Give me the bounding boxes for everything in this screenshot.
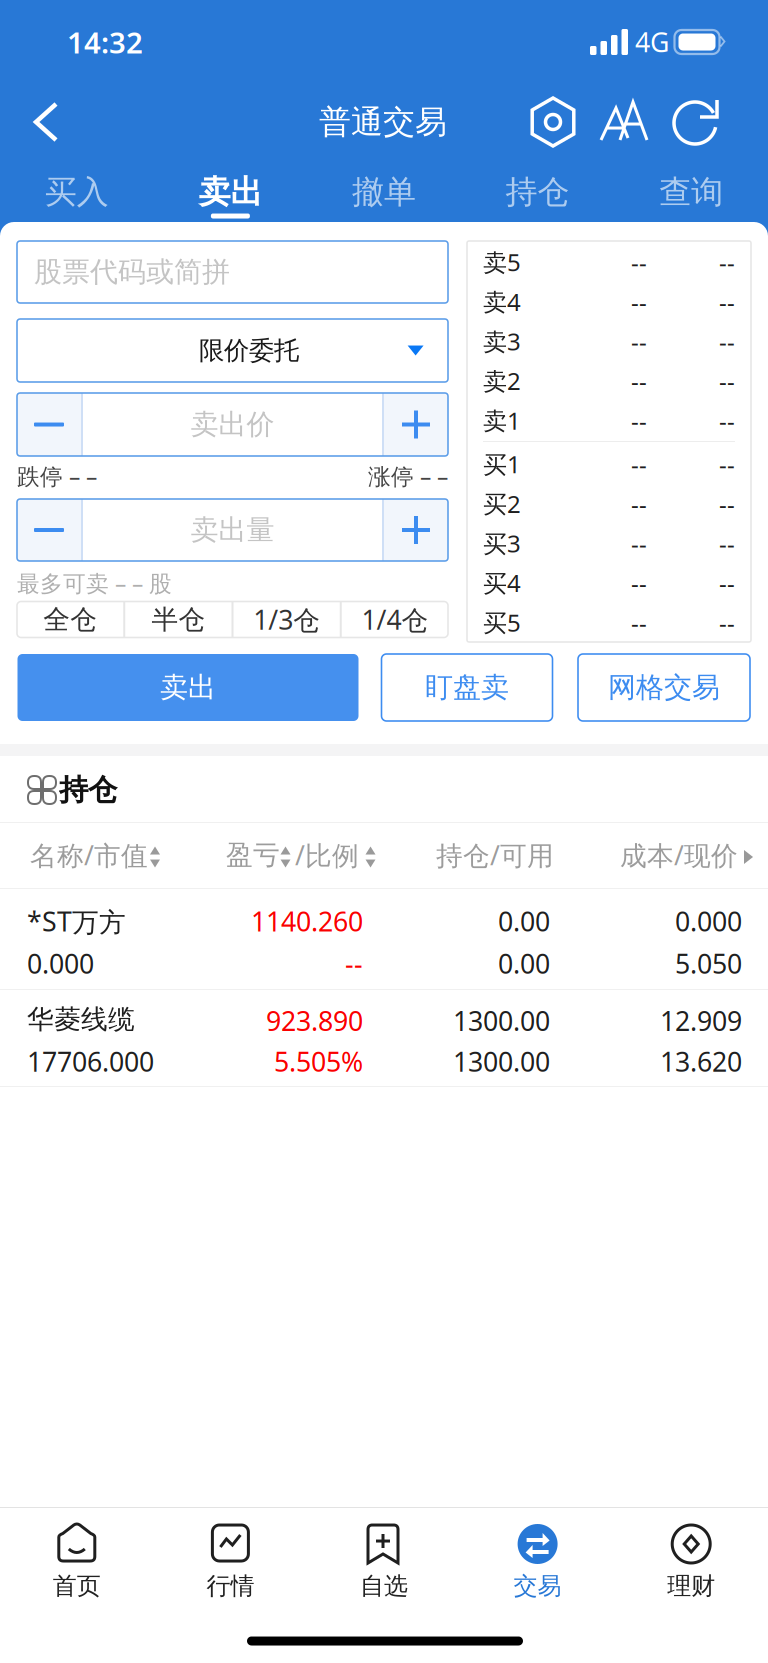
button[interactable]: 首页 xyxy=(0,1517,153,1617)
staticText: 限价委托 xyxy=(199,335,299,366)
staticText: -- xyxy=(345,946,363,981)
staticText: -- xyxy=(719,246,735,278)
button[interactable]: 加 xyxy=(384,499,448,561)
staticText: 卖出价 xyxy=(190,407,274,442)
button[interactable]: 盯盘卖 xyxy=(381,654,552,721)
button[interactable]: 卖出 xyxy=(17,654,358,721)
staticText: 撤单 xyxy=(352,172,416,212)
button[interactable]: 1/3仓 xyxy=(233,601,340,637)
staticText: *ST万方 xyxy=(27,903,126,939)
staticText: 盈亏 xyxy=(226,839,280,871)
staticText: 卖出 xyxy=(198,172,262,212)
staticText: 交易 xyxy=(514,1571,562,1601)
staticText: 5.505% xyxy=(274,1044,363,1079)
staticText: 成本/现价 xyxy=(620,837,738,873)
staticText: -- xyxy=(719,448,735,480)
staticText: -- xyxy=(631,325,647,357)
button[interactable]: 网格交易 xyxy=(578,654,750,721)
staticText: /比例 xyxy=(295,837,359,873)
staticText: 卖3 xyxy=(483,325,521,357)
button[interactable]: 刷新 xyxy=(669,94,725,150)
staticText: 1/4仓 xyxy=(361,602,428,637)
staticText: 卖5 xyxy=(483,246,521,278)
staticText: 14:32 xyxy=(67,22,143,61)
staticText: -- xyxy=(719,527,735,559)
button[interactable]: 全仓 xyxy=(17,601,123,637)
staticText: 行情 xyxy=(206,1571,254,1601)
staticText: 0.000 xyxy=(675,903,742,939)
staticText: 1140.260 xyxy=(251,903,363,939)
button[interactable]: 自选 xyxy=(307,1517,460,1617)
staticText: 卖出 xyxy=(160,670,216,705)
staticText: 0.000 xyxy=(27,946,94,981)
staticText: 卖1 xyxy=(483,404,521,436)
staticText: 13.620 xyxy=(660,1044,742,1079)
staticText: 买3 xyxy=(483,527,521,559)
button[interactable]: 字号 xyxy=(597,94,653,150)
staticText: -- xyxy=(719,488,735,520)
staticText: -- xyxy=(719,325,735,357)
button[interactable]: 加 xyxy=(384,393,448,456)
staticText: -- xyxy=(719,286,735,318)
staticText: 华菱线缆 xyxy=(27,1003,135,1036)
button[interactable]: 减 xyxy=(17,499,81,561)
button[interactable]: 买入 xyxy=(0,158,153,224)
staticText: 持仓 xyxy=(59,772,117,808)
button[interactable]: 卖出 xyxy=(154,158,307,224)
staticText: 买5 xyxy=(483,606,521,638)
button[interactable]: 设置 xyxy=(525,94,581,150)
staticText: -- xyxy=(631,488,647,520)
staticText: 最多可卖 – – 股 xyxy=(17,568,172,598)
staticText: 网格交易 xyxy=(608,670,720,705)
button[interactable]: 华菱线缆 xyxy=(0,989,768,1086)
staticText: 买2 xyxy=(483,488,521,520)
staticText: 全仓 xyxy=(43,603,97,636)
staticText: 买4 xyxy=(483,567,521,599)
staticText: 半仓 xyxy=(151,603,205,636)
staticText: 1/3仓 xyxy=(253,602,320,637)
button[interactable]: 1/4仓 xyxy=(342,601,448,637)
staticText: 0.00 xyxy=(498,903,550,939)
staticText: 名称/市值 xyxy=(30,837,148,873)
staticText: -- xyxy=(631,448,647,480)
button[interactable]: 持仓 xyxy=(461,158,614,224)
button[interactable]: 理财 xyxy=(615,1517,768,1617)
button[interactable]: 限价委托 xyxy=(17,319,448,382)
staticText: 持仓 xyxy=(506,172,570,212)
button[interactable]: 撤单 xyxy=(307,158,460,224)
staticText: 普通交易 xyxy=(319,102,447,142)
staticText: 股票代码或简拼 xyxy=(34,255,230,289)
staticText: 卖4 xyxy=(483,286,521,318)
button[interactable]: 行情 xyxy=(154,1517,307,1617)
staticText: -- xyxy=(719,404,735,436)
staticText: -- xyxy=(631,365,647,397)
staticText: 查询 xyxy=(659,172,723,212)
staticText: -- xyxy=(631,286,647,318)
staticText: 自选 xyxy=(360,1571,408,1601)
staticText: 卖2 xyxy=(483,365,521,397)
button[interactable]: 返回 xyxy=(14,86,82,158)
button[interactable]: 半仓 xyxy=(125,601,231,637)
staticText: 4G xyxy=(635,24,669,60)
staticText: 5.050 xyxy=(675,946,742,981)
button[interactable]: 减 xyxy=(17,393,81,456)
staticText: 1300.00 xyxy=(453,1044,550,1079)
staticText: 跌停 – – xyxy=(17,461,97,491)
staticText: 买1 xyxy=(483,448,521,480)
button[interactable]: 交易 xyxy=(461,1517,614,1617)
staticText: -- xyxy=(719,606,735,638)
staticText: -- xyxy=(631,246,647,278)
staticText: 涨停 – – xyxy=(368,461,448,491)
staticText: -- xyxy=(631,404,647,436)
button[interactable]: 查询 xyxy=(615,158,768,224)
staticText: -- xyxy=(631,606,647,638)
staticText: 923.890 xyxy=(266,1003,363,1038)
staticText: 买入 xyxy=(45,172,109,212)
staticText: -- xyxy=(719,365,735,397)
staticText: 1300.00 xyxy=(453,1003,550,1038)
staticText: 理财 xyxy=(667,1571,715,1601)
staticText: 盯盘卖 xyxy=(425,670,509,705)
staticText: 0.00 xyxy=(498,946,550,981)
staticText: 持仓/可用 xyxy=(436,837,554,873)
button[interactable]: *ST万方 xyxy=(0,888,768,989)
